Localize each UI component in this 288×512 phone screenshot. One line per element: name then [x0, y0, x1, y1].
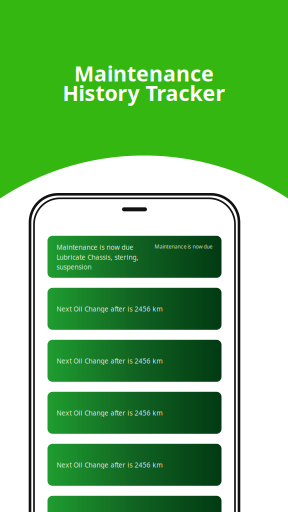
staticText: Next Oil Change after is 2456 km	[56, 408, 162, 417]
staticText: Maintenance is now due	[56, 243, 133, 252]
staticText: Maintenance is now due	[154, 243, 212, 250]
button[interactable]: Next Oil Change after is 2456 km	[47, 340, 221, 382]
staticText: Next Oil Change after is 2456 km	[56, 356, 162, 365]
staticText: suspension	[56, 262, 91, 271]
staticText: History Tracker	[62, 78, 225, 107]
staticText: Maintenance	[74, 59, 214, 87]
button[interactable]: Next Oil Change after is 2456 km	[47, 392, 221, 434]
button[interactable]: Next Oil Change after is 2456 km	[47, 288, 221, 330]
staticText: Next Oil Change after is 2456 km	[56, 460, 162, 469]
staticText: Next Oil Change after is 2456 km	[56, 304, 162, 313]
button[interactable]: Maintenance is now due	[47, 236, 221, 278]
staticText: Lubricate Chassis, stering,	[56, 253, 138, 262]
button[interactable]: Next Oil Change after is 2456 km	[47, 444, 221, 486]
button[interactable]: Next Oil Change after is 2456 km	[47, 496, 221, 512]
